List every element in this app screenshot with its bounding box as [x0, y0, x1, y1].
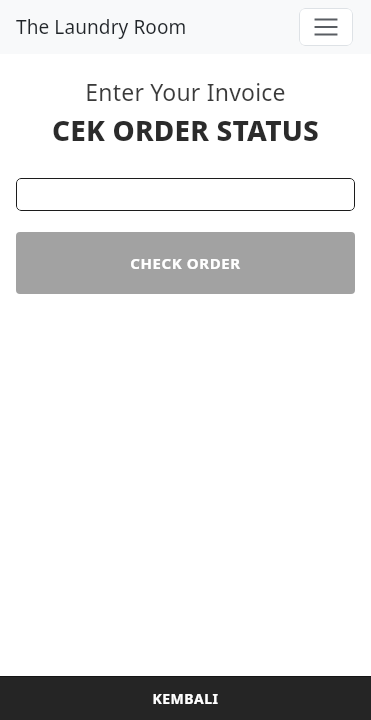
staticText: CHECK ORDER [130, 253, 241, 273]
staticText: KEMBALI [152, 689, 219, 708]
staticText: CEK ORDER STATUS [0, 111, 371, 149]
button[interactable]: Invoice number input [16, 178, 355, 211]
staticText: Enter Your Invoice [0, 76, 371, 107]
button[interactable]: Open navigation menu [299, 8, 353, 46]
button[interactable]: KEMBALI [0, 676, 371, 720]
button[interactable]: CHECK ORDER [16, 232, 355, 294]
staticText: The Laundry Room [16, 14, 187, 40]
